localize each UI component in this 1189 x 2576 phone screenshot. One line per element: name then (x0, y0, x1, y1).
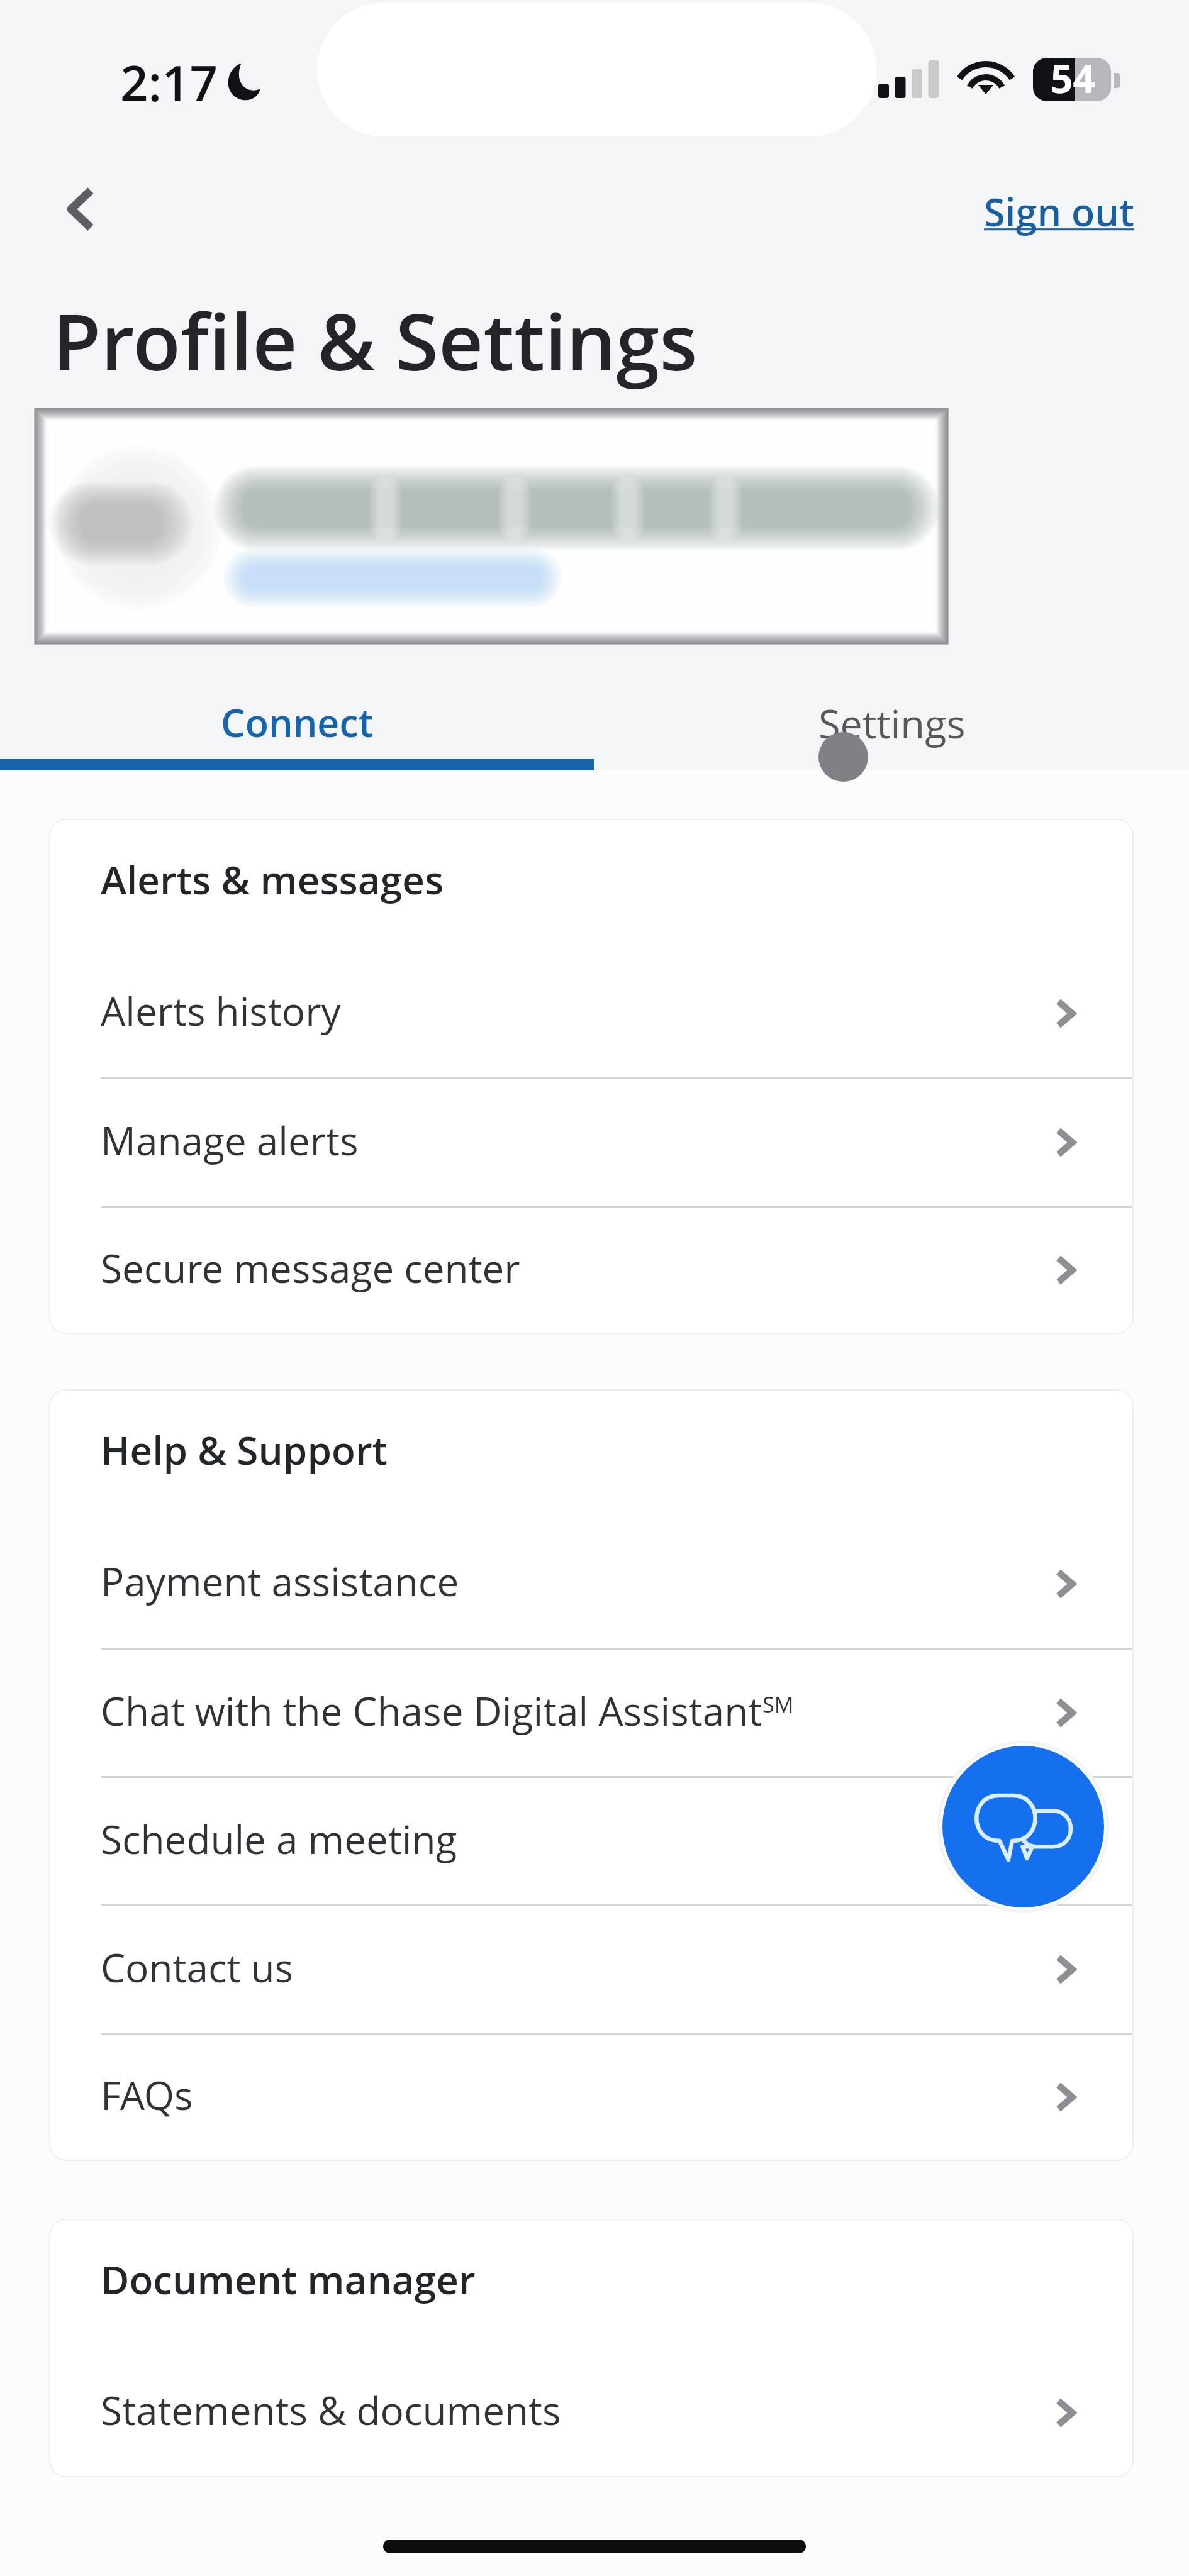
button[interactable]: Statements & documents (50, 2349, 1132, 2476)
button[interactable]: Alerts history (50, 949, 1132, 1077)
staticText: Schedule a meeting (101, 1813, 457, 1865)
button[interactable]: Chat with us (942, 1746, 1104, 1907)
staticText: Chat with the Chase Digital Assistant (101, 1684, 762, 1737)
button[interactable]: Manage alerts (50, 1079, 1132, 1206)
staticText: FAQs (101, 2068, 193, 2121)
button[interactable]: Back (42, 171, 118, 247)
staticText: Alerts & messages (101, 853, 444, 906)
button[interactable]: Sign out (984, 186, 1134, 238)
staticText: SM (762, 1690, 794, 1719)
staticText: Contact us (101, 1941, 294, 1994)
button[interactable]: Contact us (50, 1906, 1132, 2033)
staticText: Help & Support (101, 1423, 388, 1476)
button[interactable]: Secure message center (50, 1207, 1132, 1333)
staticText: Secure message center (101, 1241, 520, 1294)
staticText: 2:17 (120, 49, 218, 116)
staticText: Payment assistance (101, 1555, 459, 1607)
staticText: Sign out (984, 186, 1134, 238)
button[interactable]: Schedule a meeting (50, 1778, 1132, 1904)
button[interactable]: Settings (594, 654, 1189, 770)
staticText: 54 (1051, 58, 1095, 95)
button[interactable]: FAQs (50, 2035, 1132, 2160)
staticText: Connect (221, 696, 374, 748)
staticText: Document manager (101, 2253, 476, 2306)
button[interactable]: Chat with the Chase Digital Assistant (50, 1650, 1132, 1776)
button[interactable]: Payment assistance (50, 1519, 1132, 1648)
staticText: Statements & documents (101, 2384, 561, 2436)
staticText: Profile & Settings (53, 287, 698, 393)
staticText: Alerts history (101, 984, 341, 1037)
staticText: Manage alerts (101, 1114, 359, 1167)
staticText: Settings (818, 696, 966, 750)
button[interactable]: Connect (0, 654, 594, 770)
button[interactable] (36, 409, 947, 643)
